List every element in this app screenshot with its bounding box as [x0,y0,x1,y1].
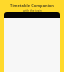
staticText: Timetable Companion [10,3,54,8]
staticText: with the train [23,9,42,13]
